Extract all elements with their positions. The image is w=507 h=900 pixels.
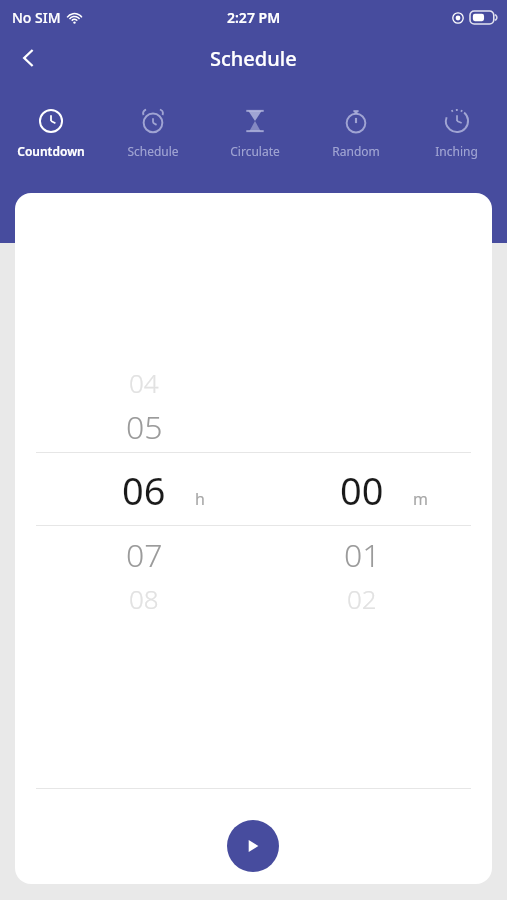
button[interactable]: Schedule <box>102 100 204 178</box>
staticText: h <box>195 488 205 510</box>
button[interactable]: Countdown <box>0 100 102 178</box>
button[interactable]: 06 <box>99 464 205 516</box>
button[interactable]: 07 <box>99 533 189 577</box>
staticText: 01 <box>344 533 381 577</box>
staticText: 05 <box>126 405 163 449</box>
button[interactable]: 01 <box>317 533 407 577</box>
staticText: No SIM <box>12 8 61 27</box>
button[interactable]: 00 <box>317 464 428 516</box>
staticText: Schedule <box>210 45 297 72</box>
staticText: 08 <box>129 581 159 616</box>
staticText: 2:27 PM <box>227 8 281 27</box>
staticText: 07 <box>126 533 163 577</box>
button[interactable]: Inching <box>406 100 507 178</box>
button[interactable]: Circulate <box>204 100 305 178</box>
staticText: Countdown <box>17 143 85 159</box>
button[interactable]: 08 <box>99 576 189 620</box>
staticText: 04 <box>129 365 159 400</box>
staticText: m <box>413 488 428 510</box>
button[interactable]: 04 <box>99 360 189 404</box>
staticText: Inching <box>435 143 478 159</box>
staticText: 02 <box>347 581 377 616</box>
staticText: Circulate <box>230 143 280 159</box>
button[interactable]: Start <box>227 820 279 872</box>
staticText: 00 <box>340 464 384 516</box>
button[interactable]: Random <box>305 100 406 178</box>
button[interactable]: 02 <box>317 576 407 620</box>
staticText: 06 <box>122 464 166 516</box>
staticText: Random <box>332 143 380 159</box>
button[interactable]: 05 <box>99 405 189 449</box>
staticText: Schedule <box>127 143 179 159</box>
button[interactable]: Back <box>6 35 52 81</box>
